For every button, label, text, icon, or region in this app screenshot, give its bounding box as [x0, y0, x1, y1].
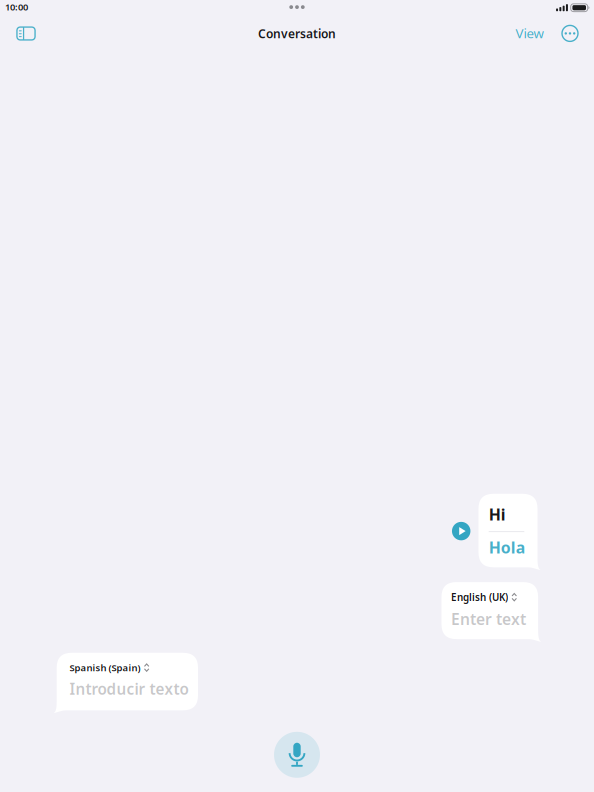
staticText: Conversation: [258, 25, 336, 41]
staticText: Introducir texto: [69, 678, 188, 699]
staticText: Hi: [489, 503, 506, 525]
button[interactable]: English (UK): [441, 582, 541, 642]
button[interactable]: Play translation: [452, 522, 470, 540]
staticText: Spanish (Spain): [69, 661, 140, 674]
button[interactable]: View: [513, 18, 555, 46]
button[interactable]: Spanish (Spain): [54, 653, 198, 713]
staticText: Hola: [489, 537, 526, 558]
staticText: Enter text: [451, 608, 526, 629]
staticText: English (UK): [451, 590, 508, 604]
button[interactable]: Show Sidebar: [9, 18, 43, 46]
staticText: View: [515, 24, 543, 42]
button[interactable]: Record audio: [274, 732, 320, 778]
button[interactable]: More Options: [555, 18, 585, 46]
staticText: 10:00: [5, 1, 28, 13]
